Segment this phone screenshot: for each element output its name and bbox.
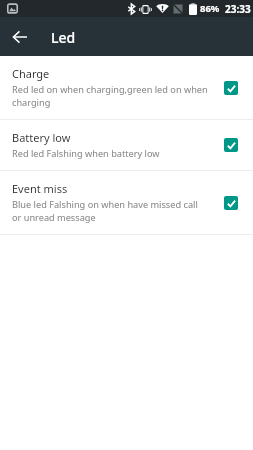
- button[interactable]: Navigate up: [5, 22, 35, 52]
- staticText: 23:33: [225, 2, 251, 16]
- staticText: Event miss: [12, 181, 68, 196]
- staticText: Charge: [12, 66, 50, 81]
- button[interactable]: Event miss: [0, 171, 253, 235]
- staticText: 86%: [200, 2, 220, 15]
- button[interactable]: Toggle Event miss: [224, 196, 238, 210]
- button[interactable]: Battery low: [0, 120, 253, 171]
- button[interactable]: Toggle Charge: [224, 81, 238, 95]
- staticText: Red led on when charging,green led on wh…: [12, 83, 209, 109]
- button[interactable]: Charge: [0, 56, 253, 120]
- button[interactable]: Toggle Battery low: [224, 138, 238, 152]
- staticText: Red led Falshing when battery low: [12, 147, 160, 160]
- staticText: Blue led Falshing on when have missed ca…: [12, 198, 209, 224]
- staticText: Battery low: [12, 130, 71, 145]
- staticText: Led: [51, 28, 76, 47]
